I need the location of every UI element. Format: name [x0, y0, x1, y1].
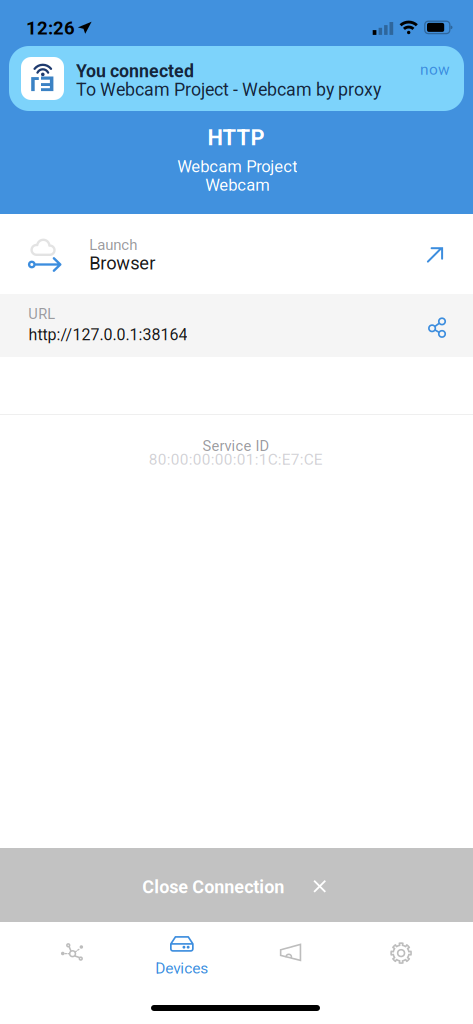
- staticText: 80:00:00:00:01:1C:E7:CE: [149, 451, 323, 469]
- button[interactable]: Network: [18, 924, 127, 984]
- staticText: Launch: [89, 236, 137, 254]
- staticText: Browser: [89, 252, 155, 274]
- staticText: Webcam: [205, 175, 270, 195]
- button[interactable]: You connected: [9, 46, 464, 111]
- staticText: Webcam Project: [177, 157, 297, 176]
- staticText: You connected: [76, 61, 194, 81]
- button[interactable]: Broadcast: [236, 924, 346, 984]
- staticText: URL: [28, 305, 55, 322]
- button[interactable]: Devices: [127, 924, 236, 984]
- staticText: To Webcam Project - Webcam by proxy: [76, 79, 381, 100]
- staticText: http://127.0.0.1:38164: [28, 325, 187, 344]
- button[interactable]: Close Connection: [0, 848, 473, 922]
- staticText: Devices: [155, 959, 208, 977]
- staticText: Service ID: [202, 437, 269, 454]
- staticText: 12:26: [26, 17, 75, 39]
- staticText: Close Connection: [142, 877, 284, 898]
- button[interactable]: Settings: [346, 924, 455, 984]
- button[interactable]: Launch: [0, 214, 473, 294]
- staticText: HTTP: [207, 125, 264, 150]
- staticText: now: [420, 60, 450, 78]
- button[interactable]: URL: [0, 294, 473, 357]
